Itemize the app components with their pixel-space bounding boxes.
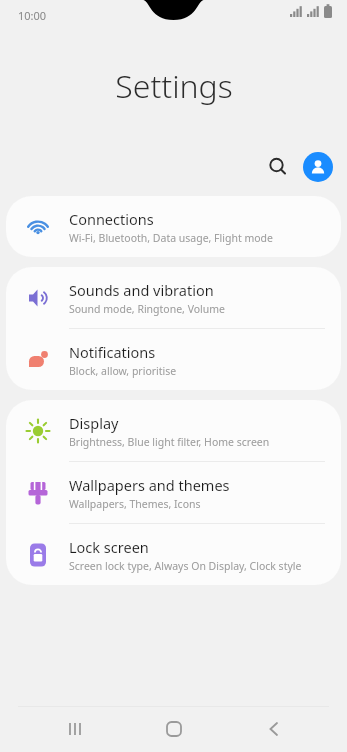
button[interactable]: Recents xyxy=(51,706,99,752)
button[interactable]: Display xyxy=(6,400,341,461)
staticText: Wallpapers and themes xyxy=(69,475,230,495)
staticText: Settings xyxy=(115,64,233,108)
staticText: Wallpapers, Themes, Icons xyxy=(69,497,201,511)
staticText: 10:00 xyxy=(18,8,47,23)
staticText: Block, allow, prioritise xyxy=(69,364,177,378)
button[interactable]: Notifications xyxy=(6,329,341,390)
staticText: Display xyxy=(69,413,119,433)
staticText: Lock screen xyxy=(69,537,149,557)
button[interactable]: Account xyxy=(303,152,333,182)
button[interactable]: Back xyxy=(248,706,296,752)
staticText: Sound mode, Ringtone, Volume xyxy=(69,302,226,316)
button[interactable]: Wallpapers and themes xyxy=(6,462,341,523)
button[interactable]: Sounds and vibration xyxy=(6,267,341,328)
button[interactable]: Lock screen xyxy=(6,524,341,585)
staticText: Sounds and vibration xyxy=(69,280,214,300)
button[interactable]: Search xyxy=(259,148,297,186)
staticText: Brightness, Blue light filter, Home scre… xyxy=(69,435,270,449)
button[interactable]: Home xyxy=(150,706,198,752)
button[interactable]: Connections xyxy=(6,196,341,257)
staticText: Screen lock type, Always On Display, Clo… xyxy=(69,559,302,573)
staticText: Wi-Fi, Bluetooth, Data usage, Flight mod… xyxy=(69,231,274,245)
staticText: Notifications xyxy=(69,342,156,362)
staticText: Connections xyxy=(69,209,154,229)
